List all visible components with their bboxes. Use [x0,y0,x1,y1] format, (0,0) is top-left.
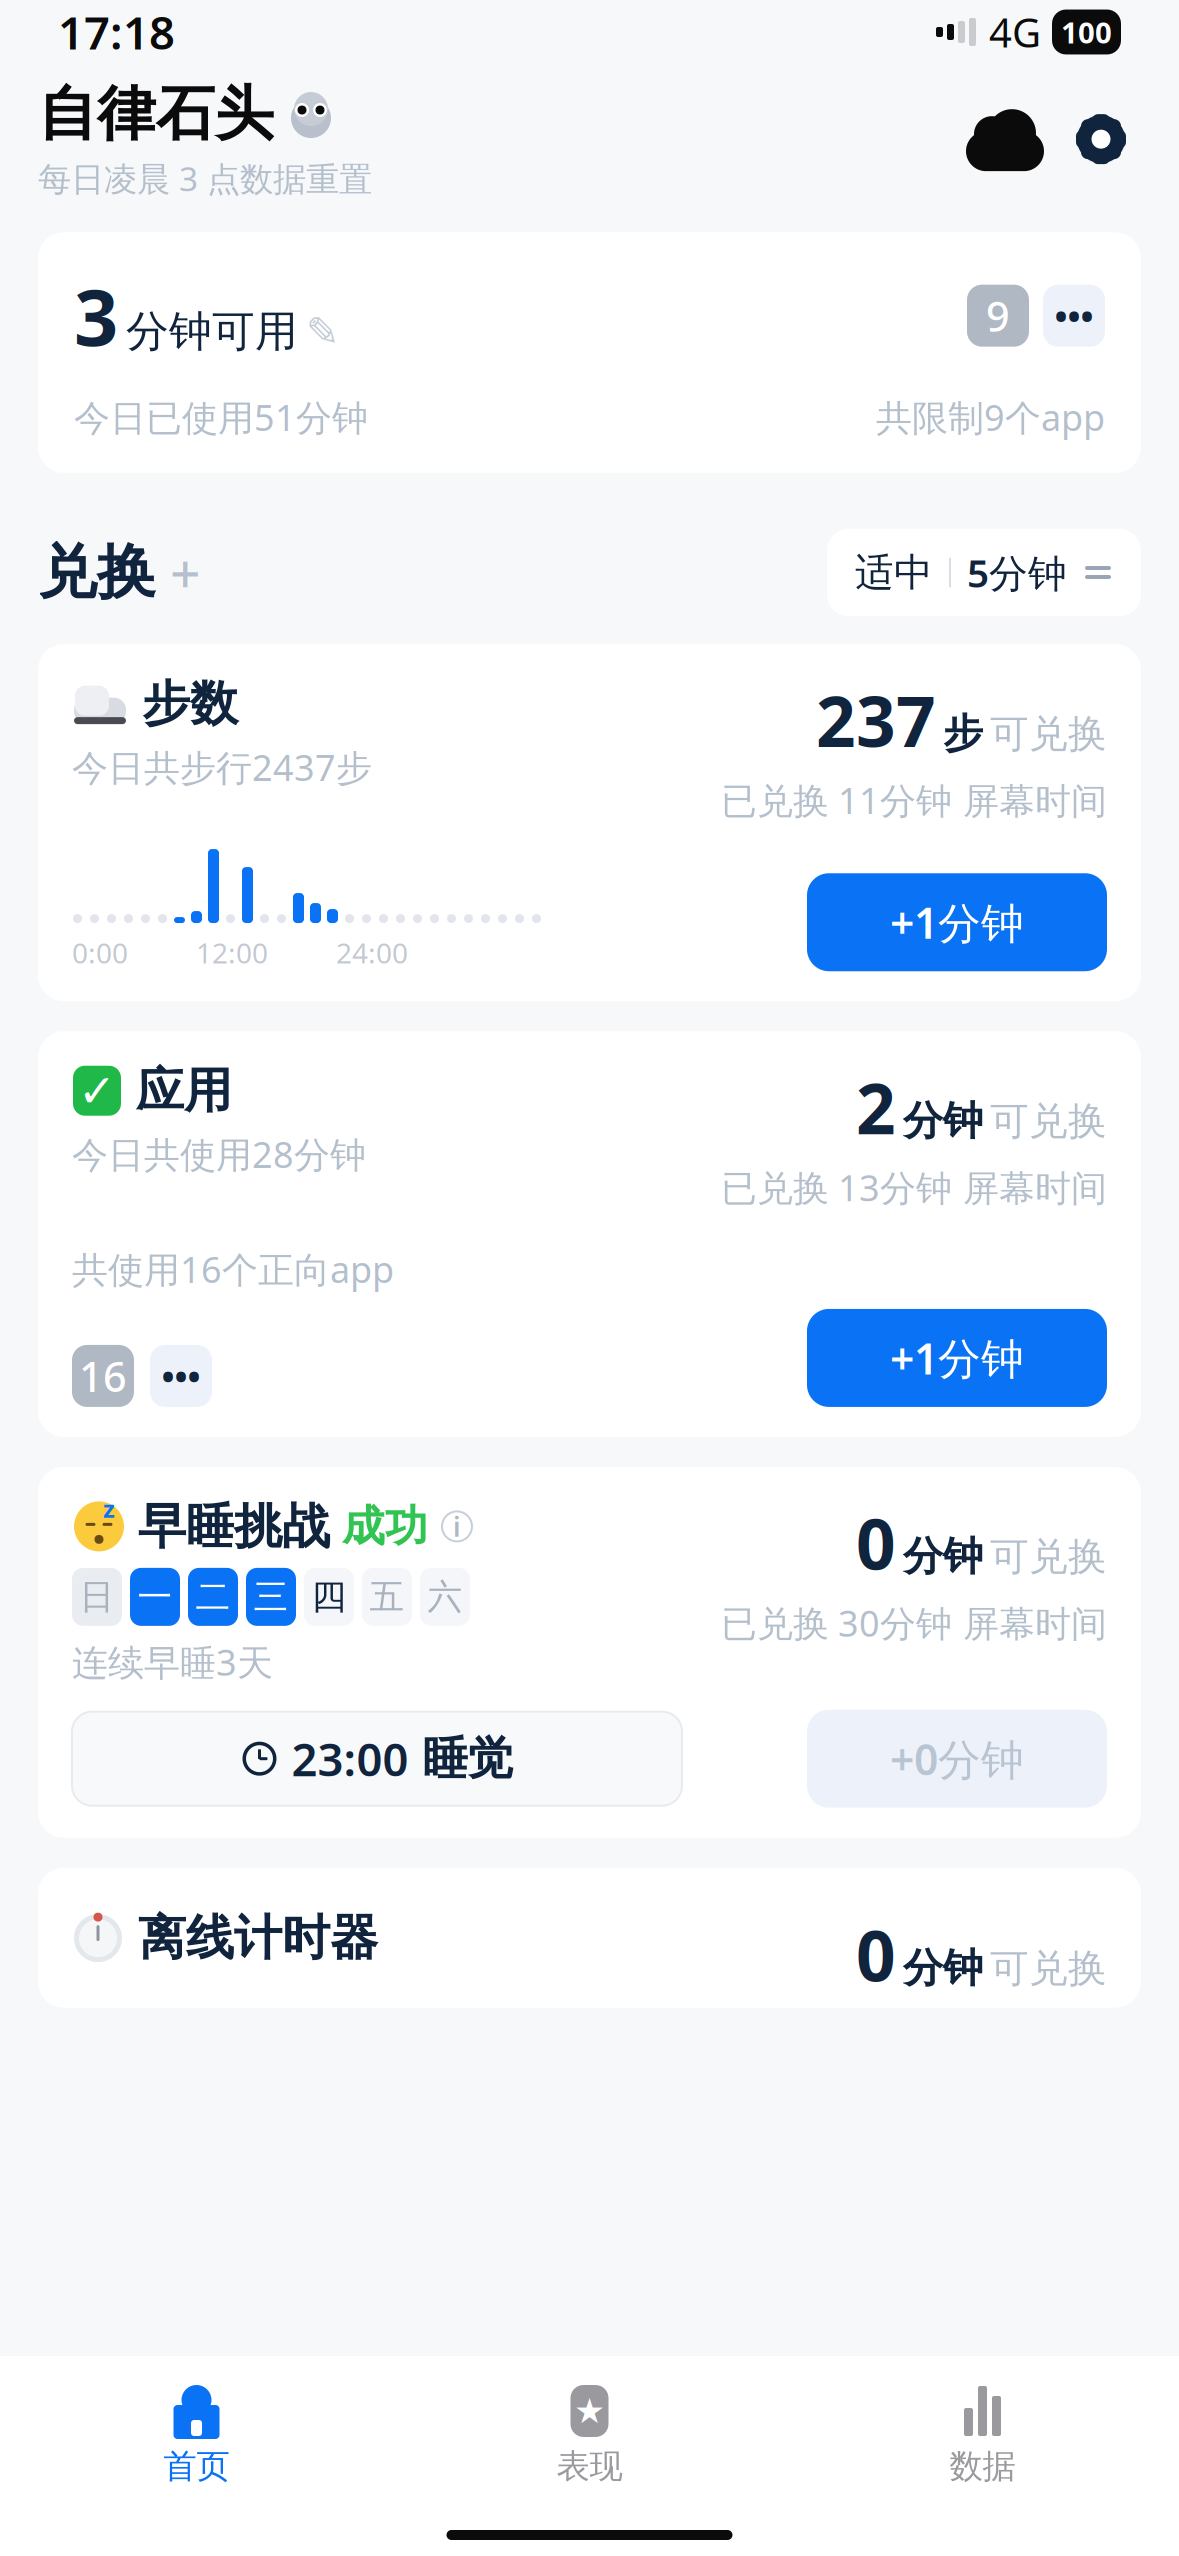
staticText: 237 [816,674,936,766]
staticText: 可兑换 [990,710,1107,758]
staticText: 0 [856,1497,896,1589]
staticText: 四 [311,1576,346,1618]
staticText: 100 [1061,12,1112,51]
staticText: z [103,1492,115,1524]
staticText: 日 [79,1576,114,1618]
staticText: 已兑换 11分钟 屏幕时间 [721,776,1107,824]
staticText: 分钟 [903,1532,983,1581]
staticText: 适中 [855,549,933,596]
staticText: 共限制9个app [876,393,1105,441]
staticText: 23:00 [291,1729,408,1789]
staticText: 5分钟 [967,547,1067,598]
staticText: 应用 [136,1061,232,1120]
staticText: 三 [253,1576,288,1618]
staticText: 4G [989,5,1041,58]
staticText: 0:00 [72,934,128,971]
staticText: ✎ [306,309,340,354]
staticText: 自律石头 [38,78,274,150]
staticText: 可兑换 [990,1945,1107,1992]
staticText: ••• [1054,293,1093,339]
button[interactable]: ★ [393,2374,786,2497]
staticText: 每日凌晨 3 点数据重置 [38,156,372,200]
staticText: 已兑换 30分钟 屏幕时间 [721,1599,1107,1647]
staticText: 兑换 [38,536,156,609]
staticText: 可兑换 [990,1533,1107,1581]
staticText: 表现 [556,2446,622,2487]
staticText: 首页 [163,2446,229,2487]
button[interactable]: 说明 [440,1509,474,1543]
staticText: 今日共使用28分钟 [72,1130,366,1178]
staticText: 数据 [949,2446,1015,2487]
staticText: 六 [427,1576,462,1618]
staticText: 2 [856,1061,896,1153]
staticText: 连续早睡3天 [72,1638,273,1686]
button[interactable]: 适中 [827,529,1141,616]
staticText: 一 [137,1576,172,1618]
button[interactable]: +0分钟 [807,1710,1107,1808]
staticText: +1分钟 [890,1330,1024,1386]
staticText: 分钟可用 [126,305,298,358]
staticText: 今日已使用51分钟 [74,393,368,441]
staticText: ★ [574,2391,605,2431]
staticText: 0 [856,1909,896,2001]
button[interactable]: 设置 [1061,104,1141,174]
staticText: 五 [369,1576,404,1618]
button[interactable]: +1分钟 [807,1309,1107,1407]
button[interactable]: 16 [72,1345,134,1407]
staticText: 分钟 [903,1096,983,1145]
staticText: 今日共步行2437步 [72,743,372,791]
button[interactable]: 编辑 [306,309,340,354]
button[interactable]: 云同步 [957,104,1053,174]
staticText: 共使用16个正向app [72,1245,394,1293]
staticText: 睡觉 [422,1731,512,1786]
staticText: + [170,537,201,608]
staticText: 可兑换 [990,1097,1107,1145]
staticText: 已兑换 13分钟 屏幕时间 [721,1163,1107,1211]
staticText: 步数 [142,674,238,733]
button[interactable]: 首页 [0,2374,393,2497]
staticText: 早睡挑战 [138,1497,330,1556]
staticText: 离线计时器 [138,1909,378,1968]
staticText: 12:00 [196,934,268,971]
staticText: +1分钟 [890,894,1024,951]
button[interactable]: 更多应用 [150,1345,212,1407]
button[interactable]: 更多 [1043,285,1105,347]
staticText: i [453,1509,461,1544]
staticText: 二 [195,1576,230,1618]
staticText: 9 [986,288,1010,343]
button[interactable]: +1分钟 [807,873,1107,971]
staticText: 成功 [342,1500,428,1553]
staticText: 17:18 [58,2,175,62]
button[interactable]: 9 [967,285,1029,347]
staticText: ••• [161,1353,200,1399]
staticText: +0分钟 [890,1730,1024,1787]
staticText: 16 [79,1348,127,1403]
staticText: 步 [943,709,983,758]
staticText: 3 [74,264,118,367]
staticText: ✓ [78,1065,116,1116]
button[interactable]: 添加 [156,537,207,608]
button[interactable]: 23:00 [72,1712,682,1806]
staticText: 分钟 [903,1944,983,1993]
staticText: 24:00 [336,934,408,971]
button[interactable]: 数据 [786,2374,1179,2497]
